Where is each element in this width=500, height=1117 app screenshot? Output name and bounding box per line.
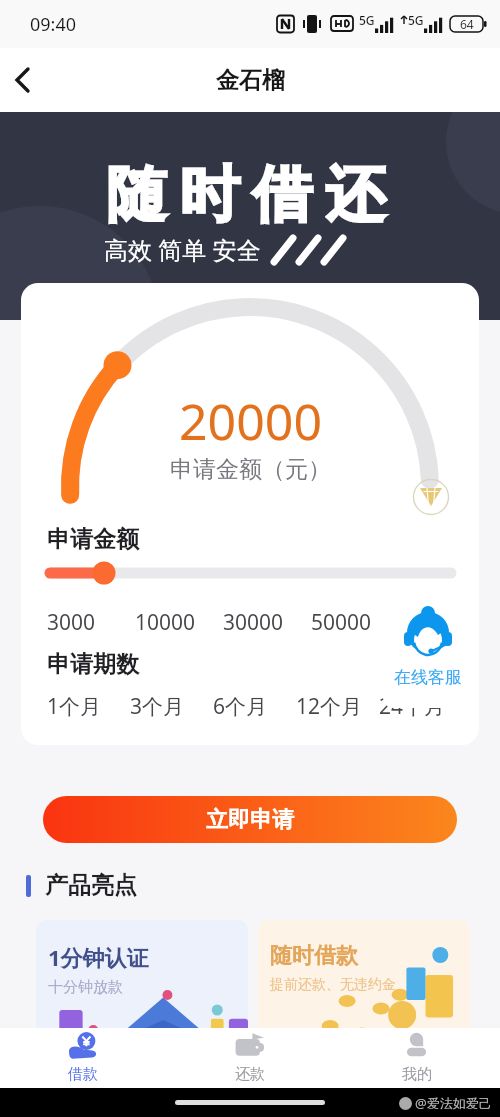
staticText: 随时借款 <box>270 942 358 970</box>
staticText: 5G <box>408 12 424 28</box>
button[interactable]: 12个月 <box>296 692 379 721</box>
staticText: 12个月 <box>296 692 363 721</box>
button[interactable] <box>40 561 460 585</box>
staticText: 立即申请 <box>206 806 294 834</box>
staticText: 6个月 <box>213 692 268 721</box>
button[interactable]: 随时借款 <box>258 920 470 1045</box>
button[interactable]: 立即申请 <box>43 796 457 843</box>
staticText: 申请金额 <box>47 525 139 554</box>
staticText: 我的 <box>402 1065 432 1084</box>
staticText: 提前还款、无违约金 <box>270 976 396 994</box>
staticText: @爱法如爱己 <box>415 1094 492 1112</box>
staticText: 1分钟认证 <box>48 942 149 972</box>
staticText: 借款 <box>68 1065 98 1084</box>
staticText: 在线客服 <box>394 667 462 688</box>
button[interactable]: Back <box>0 58 44 102</box>
staticText: 申请金额（元） <box>170 455 331 484</box>
button[interactable]: 1个月 <box>47 692 130 721</box>
button[interactable]: 我的 <box>333 1028 500 1088</box>
staticText: 3个月 <box>130 692 185 721</box>
staticText: 24个月 <box>379 692 446 721</box>
staticText: 30000 <box>223 608 284 637</box>
button[interactable]: 3个月 <box>130 692 213 721</box>
staticText: 申请期数 <box>47 650 139 679</box>
button[interactable]: 还款 <box>166 1028 333 1088</box>
staticText: 09:40 <box>30 12 77 37</box>
staticText: 1个月 <box>47 692 102 721</box>
button[interactable]: 6个月 <box>213 692 296 721</box>
staticText: 50000 <box>311 608 372 637</box>
button[interactable]: 借款 <box>0 1028 166 1088</box>
staticText: 5G <box>359 12 375 28</box>
staticText: 3000 <box>47 608 96 637</box>
staticText: 64 <box>460 16 474 32</box>
staticText: 高效 简单 安全 <box>104 233 261 266</box>
staticText: 20000 <box>179 387 322 455</box>
staticText: 还款 <box>235 1065 265 1084</box>
button[interactable]: 24个月 <box>379 692 462 721</box>
staticText: 金石榴 <box>216 66 285 95</box>
staticText: 随时借还 <box>100 157 392 233</box>
staticText: 产品亮点 <box>45 871 137 900</box>
button[interactable]: 在线客服 <box>383 595 473 708</box>
button[interactable]: 1分钟认证 <box>36 920 248 1045</box>
staticText: 10000 <box>135 608 196 637</box>
staticText: 十分钟放款 <box>48 978 123 997</box>
